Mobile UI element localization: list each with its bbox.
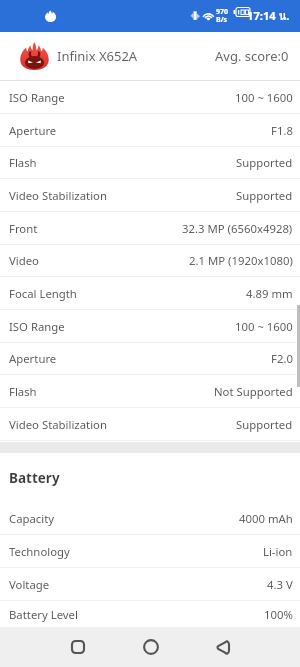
button[interactable]: Aperture xyxy=(0,114,300,147)
button[interactable]: Voltage xyxy=(0,568,300,601)
button[interactable]: Front xyxy=(0,212,300,245)
staticText: 4.3 V xyxy=(267,577,293,592)
staticText: Flash xyxy=(9,384,37,399)
staticText: F1.8 xyxy=(271,123,293,138)
staticText: ISO Range xyxy=(9,319,65,334)
staticText: F2.0 xyxy=(271,351,293,366)
staticText: Not Supported xyxy=(214,384,293,399)
staticText: 17:14 น. xyxy=(247,7,290,25)
staticText: 100% xyxy=(264,607,293,622)
button[interactable]: Recent apps xyxy=(54,627,102,667)
staticText: Supported xyxy=(236,155,293,170)
button[interactable]: Flash xyxy=(0,375,300,408)
staticText: ISO Range xyxy=(9,90,65,105)
staticText: Supported xyxy=(236,417,293,432)
button[interactable]: Video Stabilization xyxy=(0,408,300,441)
staticText: Technology xyxy=(9,544,70,559)
button[interactable]: Video Stabilization xyxy=(0,179,300,212)
staticText: Avg. score:0 xyxy=(215,47,289,65)
staticText: 32.3 MP (6560x4928) xyxy=(182,221,293,236)
staticText: Video Stabilization xyxy=(9,417,107,432)
staticText: 4.89 mm xyxy=(246,286,293,301)
button[interactable]: Capacity xyxy=(0,502,300,535)
staticText: Flash xyxy=(9,155,37,170)
staticText: Aperture xyxy=(9,123,57,138)
button[interactable]: Aperture xyxy=(0,343,300,375)
staticText: 100 ~ 1600 xyxy=(235,319,293,334)
staticText: Front xyxy=(9,221,38,236)
staticText: Battery xyxy=(9,469,60,487)
button[interactable]: Technology xyxy=(0,535,300,568)
staticText: Aperture xyxy=(9,351,57,366)
staticText: 2.1 MP (1920x1080) xyxy=(189,253,293,268)
button[interactable]: ISO Range xyxy=(0,310,300,343)
button[interactable]: ISO Range xyxy=(0,81,300,114)
staticText: Video xyxy=(9,253,39,268)
staticText: Video Stabilization xyxy=(9,188,107,203)
staticText: Voltage xyxy=(9,577,50,592)
staticText: Capacity xyxy=(9,511,55,526)
staticText: Supported xyxy=(236,188,293,203)
staticText: 970 B/s xyxy=(216,7,229,24)
staticText: Focal Length xyxy=(9,286,77,301)
button[interactable]: Video xyxy=(0,245,300,277)
staticText: Infinix X652A xyxy=(57,47,138,65)
button[interactable]: Back xyxy=(199,627,247,667)
button[interactable]: Flash xyxy=(0,147,300,179)
button[interactable]: Focal Length xyxy=(0,277,300,310)
staticText: 100 ~ 1600 xyxy=(235,90,293,105)
staticText: 4000 mAh xyxy=(239,511,293,526)
button[interactable]: Home xyxy=(127,627,175,667)
staticText: Battery Level xyxy=(9,607,78,622)
button[interactable]: Battery Level xyxy=(0,601,300,627)
staticText: Li-ion xyxy=(263,544,293,559)
